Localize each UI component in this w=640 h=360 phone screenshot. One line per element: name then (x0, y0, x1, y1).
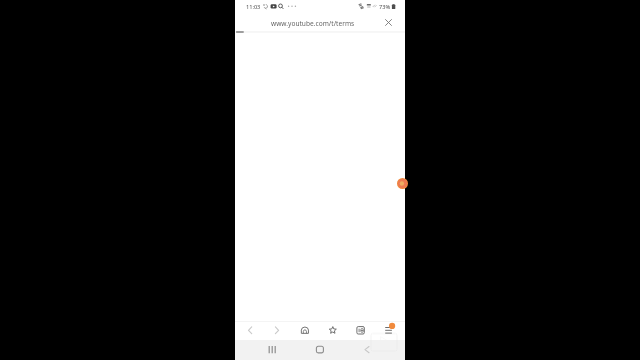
button[interactable]: Tabs (350, 320, 372, 341)
staticText: www.youtube.com/t/terms (271, 19, 355, 28)
button[interactable]: Menu (378, 320, 400, 341)
button[interactable]: Recent apps (260, 340, 282, 360)
staticText: 73% (379, 3, 391, 11)
button[interactable]: Home (294, 320, 316, 341)
button[interactable]: Back (355, 340, 377, 360)
staticText: 11:03 (246, 3, 261, 11)
button[interactable]: Close tab (383, 17, 394, 28)
button[interactable]: Forward (266, 320, 288, 341)
button[interactable]: Bookmarks (322, 320, 344, 341)
button[interactable]: Floating video bubble (397, 178, 408, 189)
button[interactable]: Home (309, 340, 331, 360)
button[interactable]: Back (239, 320, 261, 341)
